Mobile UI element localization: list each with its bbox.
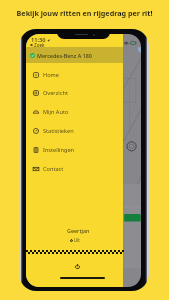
staticText: Home [43,71,59,79]
button[interactable]: Home [26,65,123,84]
staticText: Instellingen [43,146,75,154]
staticText: Statistieken [43,127,74,135]
staticText: Overzicht [43,89,68,97]
button[interactable]: Uitloggen [72,261,83,272]
staticText: 11:30 [31,36,46,44]
button[interactable]: Instellingen [26,140,123,159]
button[interactable]: Contact [26,159,123,178]
staticText: Mijn Auto [43,108,69,116]
staticText: Uit [74,237,80,243]
staticText: Geertjan [67,227,90,234]
staticText: Bekijk jouw ritten en rijgedrag per rit! [0,8,169,18]
button[interactable]: Uit [70,237,80,243]
button[interactable]: Mijn Auto [26,102,123,121]
staticText: Mercedes-Benz A 180 [37,52,92,59]
staticText: Contact [43,165,64,173]
button[interactable]: Zoek [29,42,45,48]
button[interactable]: Overzicht [26,83,123,102]
button[interactable]: Mercedes-Benz A 180 [26,47,123,63]
button[interactable]: Statistieken [26,121,123,140]
staticText: Zoek [34,42,45,48]
